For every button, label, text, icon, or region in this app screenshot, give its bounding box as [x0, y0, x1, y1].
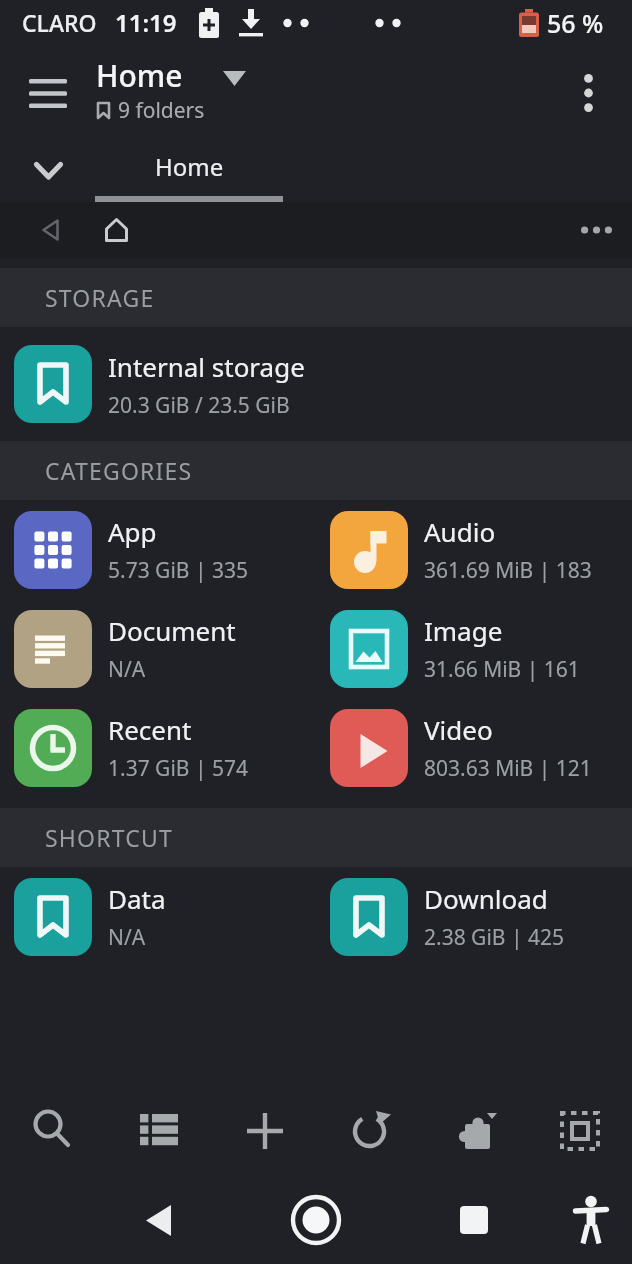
staticText: App — [108, 514, 157, 549]
staticText: Document — [108, 613, 236, 648]
button[interactable]: Download — [316, 867, 632, 966]
staticText: 2.38 GiB | 425 — [424, 923, 565, 952]
button[interactable]: Recent — [0, 698, 316, 797]
button[interactable]: Home — [95, 140, 283, 202]
staticText: Audio — [424, 514, 496, 549]
button[interactable] — [422, 1086, 527, 1176]
button[interactable]: Home — [96, 55, 246, 125]
staticText: STORAGE — [45, 282, 155, 313]
button[interactable] — [286, 1190, 346, 1250]
button[interactable] — [0, 1086, 106, 1176]
staticText: 5.73 GiB | 335 — [108, 556, 249, 585]
staticText: CLARO — [22, 7, 97, 38]
button[interactable] — [574, 208, 618, 252]
button[interactable]: Data — [0, 867, 316, 966]
button[interactable]: Audio — [316, 500, 632, 599]
staticText: 1.37 GiB | 574 — [108, 754, 249, 783]
staticText: Home — [96, 55, 183, 96]
staticText: 31.66 MiB | 161 — [424, 655, 580, 684]
staticText: 11:19 — [115, 6, 177, 39]
button[interactable]: Internal storage — [0, 327, 632, 441]
button[interactable] — [128, 1190, 188, 1250]
staticText: Video — [424, 712, 493, 747]
button[interactable]: Document — [0, 599, 316, 698]
button[interactable] — [566, 71, 610, 115]
staticText: Image — [424, 613, 503, 648]
staticText: Download — [424, 881, 548, 916]
staticText: 9 folders — [118, 96, 205, 125]
button[interactable] — [527, 1086, 632, 1176]
staticText: 20.3 GiB / 23.5 GiB — [108, 391, 290, 420]
staticText: 803.63 MiB | 121 — [424, 754, 592, 783]
staticText: 56 % — [547, 6, 604, 40]
staticText: Data — [108, 881, 166, 916]
button[interactable] — [566, 1195, 616, 1245]
staticText: N/A — [108, 923, 146, 952]
button[interactable] — [317, 1086, 422, 1176]
staticText: N/A — [108, 655, 146, 684]
button[interactable] — [20, 65, 76, 121]
button[interactable]: App — [0, 500, 316, 599]
staticText: Recent — [108, 712, 192, 747]
button[interactable] — [96, 210, 136, 250]
button[interactable] — [30, 210, 70, 250]
button[interactable] — [24, 147, 72, 195]
staticText: CATEGORIES — [45, 455, 193, 486]
button[interactable]: Video — [316, 698, 632, 797]
staticText: Home — [155, 150, 224, 183]
button[interactable] — [212, 1086, 317, 1176]
button[interactable] — [444, 1190, 504, 1250]
staticText: SHORTCUT — [45, 822, 174, 853]
button[interactable] — [106, 1086, 212, 1176]
staticText: Internal storage — [108, 349, 305, 384]
button[interactable]: Image — [316, 599, 632, 698]
staticText: 361.69 MiB | 183 — [424, 556, 592, 585]
